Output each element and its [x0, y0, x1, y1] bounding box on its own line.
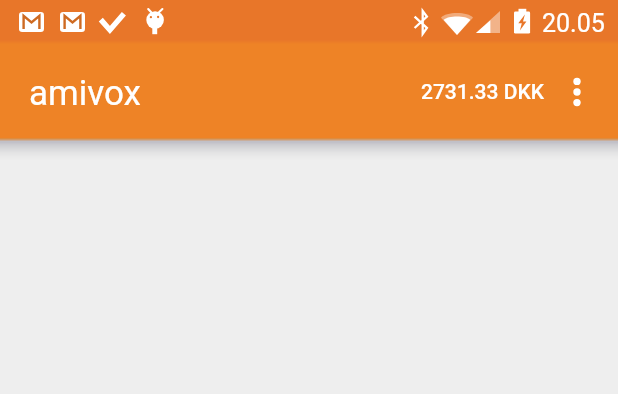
staticText: 2731.33 DKK: [421, 80, 544, 105]
button[interactable]: More options: [553, 68, 601, 116]
staticText: 20.05: [542, 9, 605, 38]
button[interactable]: amivox: [24, 44, 144, 140]
staticText: amivox: [29, 73, 141, 114]
button[interactable]: 2731.33 DKK: [409, 58, 555, 126]
